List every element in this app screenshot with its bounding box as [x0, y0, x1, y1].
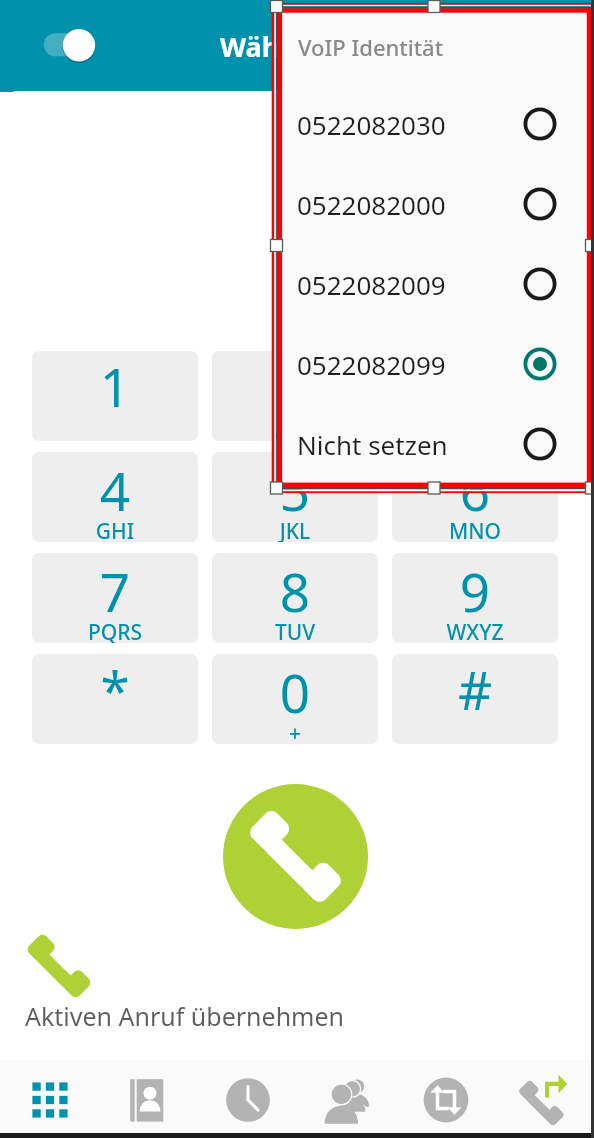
button[interactable]: 0522082030 [278, 84, 588, 164]
button[interactable]: 4 [32, 452, 198, 542]
staticText: ABC [212, 416, 378, 441]
staticText: 0522082099 [297, 347, 446, 382]
staticText: 3 [392, 353, 558, 425]
staticText: Aktiven Anruf übernehmen [25, 999, 345, 1033]
staticText: VoIP Identität [298, 32, 444, 62]
staticText: 1 [32, 351, 198, 422]
button[interactable]: 8 [212, 553, 378, 643]
staticText: Wählen [220, 28, 322, 65]
staticText: 0 [212, 656, 378, 728]
staticText: 7 [32, 555, 198, 627]
staticText: GHI [32, 517, 198, 542]
staticText: TUV [212, 618, 378, 643]
staticText: 4 [32, 454, 198, 526]
staticText: 9 [392, 555, 558, 627]
button[interactable]: 0522082000 [278, 164, 588, 244]
staticText: 0522082030 [297, 107, 446, 142]
staticText: 2 [212, 353, 378, 425]
staticText: PQRS [32, 618, 198, 643]
button[interactable]: 0522082009 [278, 244, 588, 324]
button[interactable]: 5 [212, 452, 378, 542]
button[interactable]: Toggle [40, 26, 98, 66]
staticText: 5 [212, 454, 378, 526]
staticText: # [392, 654, 558, 725]
button[interactable]: * [32, 654, 198, 744]
button[interactable]: Aktiven Anruf übernehmen [0, 928, 592, 1052]
button[interactable]: Groups [297, 1060, 396, 1133]
button[interactable]: 2 [212, 351, 378, 441]
staticText: DEF [392, 416, 558, 441]
staticText: 6 [392, 454, 558, 526]
staticText: WXYZ [392, 618, 558, 643]
button[interactable]: Nicht setzen [278, 404, 588, 484]
button[interactable]: 6 [392, 452, 558, 542]
button[interactable]: Recents [198, 1060, 297, 1133]
button[interactable]: Dialpad [0, 1060, 99, 1133]
staticText: 0522082000 [297, 187, 446, 222]
button[interactable]: # [392, 654, 558, 744]
button[interactable]: Sync [396, 1060, 495, 1133]
staticText: + [212, 719, 378, 744]
button[interactable]: 9 [392, 553, 558, 643]
button[interactable]: 1 [32, 351, 198, 441]
staticText: Nicht setzen [297, 427, 448, 462]
button[interactable]: Contacts [99, 1060, 198, 1133]
staticText: JKL [212, 517, 378, 542]
button[interactable]: Call [223, 784, 368, 929]
button[interactable]: 3 [392, 351, 558, 441]
button[interactable]: 7 [32, 553, 198, 643]
button[interactable]: 0 [212, 654, 378, 744]
staticText: 0522082009 [297, 267, 446, 302]
staticText: * [32, 654, 198, 725]
staticText: MNO [392, 517, 558, 542]
staticText: 8 [212, 555, 378, 627]
button[interactable]: 0522082099 [278, 324, 588, 404]
button[interactable]: Transfer [495, 1060, 594, 1133]
